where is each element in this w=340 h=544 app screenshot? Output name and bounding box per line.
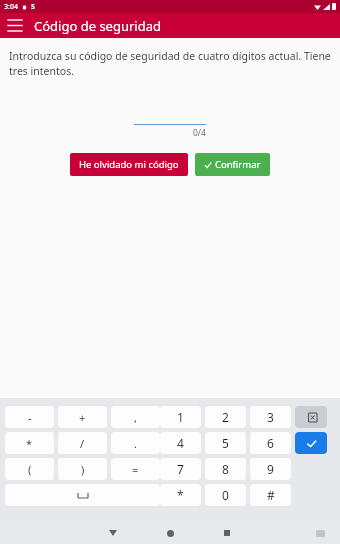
staticText: 9 — [267, 461, 274, 477]
button[interactable]: 8 — [205, 458, 246, 480]
button[interactable]: 1 — [160, 406, 201, 428]
button[interactable]: 2 — [205, 406, 246, 428]
button[interactable]: + — [58, 406, 107, 428]
button[interactable]: Confirmar — [195, 153, 270, 176]
button[interactable]: ) — [58, 458, 107, 480]
button[interactable]: , — [111, 406, 160, 428]
button[interactable]: Space — [5, 484, 160, 506]
button[interactable]: * — [160, 484, 201, 506]
button[interactable]: ( — [5, 458, 54, 480]
button[interactable]: 0 — [205, 484, 246, 506]
button[interactable]: / — [58, 432, 107, 454]
button[interactable]: - — [5, 406, 54, 428]
staticText: 3:04 — [4, 2, 18, 12]
staticText: . — [134, 436, 137, 451]
staticText: * — [26, 436, 33, 451]
button[interactable]: 7 — [160, 458, 201, 480]
staticText: Confirmar — [215, 158, 261, 171]
staticText: 4 — [177, 435, 184, 451]
staticText: 3 — [267, 409, 274, 425]
button[interactable]: Recents — [207, 523, 247, 543]
button[interactable]: 6 — [250, 432, 291, 454]
staticText: = — [132, 462, 139, 477]
staticText: 5 — [222, 435, 229, 451]
staticText: # — [267, 487, 275, 503]
staticText: 0 — [222, 487, 229, 503]
button[interactable]: * — [5, 432, 54, 454]
button[interactable]: Security code field — [134, 109, 206, 125]
button[interactable]: Enter — [295, 432, 327, 454]
button[interactable]: 9 — [250, 458, 291, 480]
button[interactable]: Backspace — [295, 406, 327, 428]
button[interactable]: Change keyboard — [310, 524, 330, 542]
button[interactable]: 5 — [205, 432, 246, 454]
staticText: Introduzca su código de seguridad de cua… — [9, 49, 331, 78]
staticText: Código de seguridad — [34, 17, 161, 35]
staticText: * — [177, 487, 184, 503]
staticText: 7 — [177, 461, 184, 477]
button[interactable]: 3 — [250, 406, 291, 428]
staticText: ( — [28, 462, 32, 477]
staticText: / — [80, 436, 85, 451]
staticText: + — [79, 410, 86, 425]
staticText: 6 — [267, 435, 274, 451]
button[interactable]: # — [250, 484, 291, 506]
button[interactable]: Menu — [0, 13, 30, 38]
staticText: 2 — [222, 409, 229, 425]
button[interactable]: 4 — [160, 432, 201, 454]
staticText: , — [134, 410, 137, 425]
button[interactable]: Home — [150, 523, 190, 543]
button[interactable]: He olvidado mi código — [70, 153, 188, 176]
staticText: ) — [81, 462, 85, 477]
staticText: 1 — [177, 409, 184, 425]
staticText: He olvidado mi código — [79, 158, 179, 171]
button[interactable]: Back — [93, 523, 133, 543]
staticText: S — [31, 2, 35, 12]
button[interactable]: = — [111, 458, 160, 480]
button[interactable]: . — [111, 432, 160, 454]
staticText: 8 — [222, 461, 229, 477]
staticText: 0/4 — [193, 127, 206, 139]
staticText: - — [28, 410, 32, 425]
